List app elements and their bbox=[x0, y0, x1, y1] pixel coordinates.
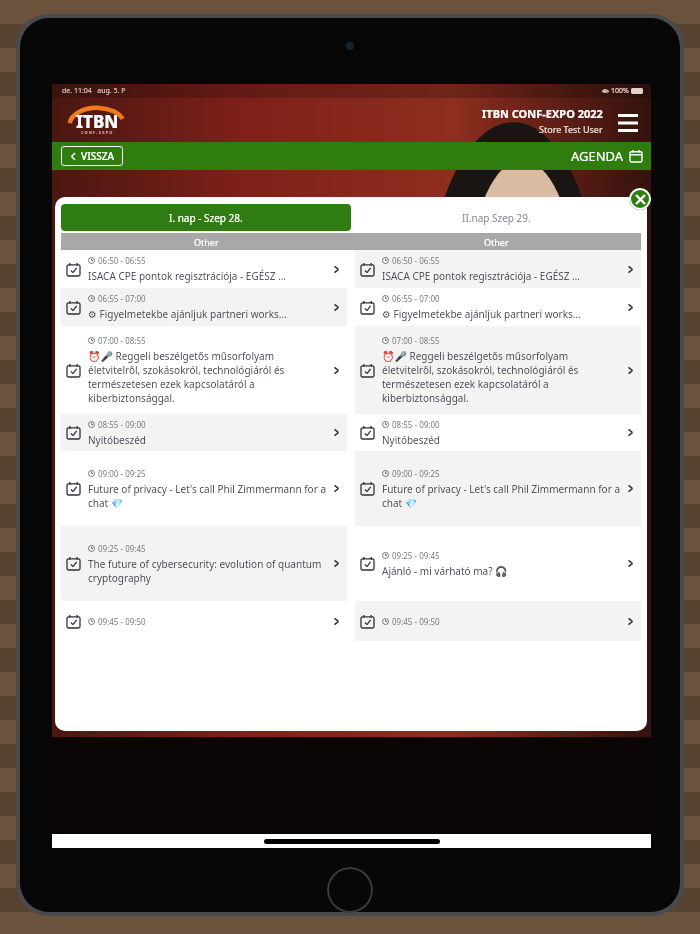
button[interactable]: 07:00 - 08:55 bbox=[61, 326, 347, 414]
staticText: 07:00 - 08:55 bbox=[392, 335, 440, 346]
staticText: Ajánló - mi várható ma? 🎧 bbox=[382, 564, 508, 578]
staticText: I. nap - Szep 28. bbox=[169, 211, 243, 225]
button[interactable]: 08:55 - 09:00 bbox=[355, 414, 641, 451]
button[interactable]: I. nap - Szep 28. bbox=[61, 204, 351, 231]
button[interactable]: 09:00 - 09:25 bbox=[355, 451, 641, 526]
staticText: ⚙ Figyelmetekbe ajánljuk partneri works… bbox=[88, 307, 287, 321]
staticText: 09:25 - 09:45 bbox=[392, 550, 440, 561]
button[interactable]: 09:00 - 09:25 bbox=[61, 451, 347, 526]
button[interactable]: 08:55 - 09:00 bbox=[61, 414, 347, 451]
staticText: Nyitóbeszéd bbox=[382, 433, 441, 447]
staticText: 09:00 - 09:25 bbox=[392, 468, 440, 479]
staticText: The future of cybersecurity: evolution o… bbox=[88, 557, 328, 585]
staticText: 06:55 - 07:00 bbox=[392, 293, 440, 304]
staticText: 09:45 - 09:50 bbox=[392, 616, 440, 627]
staticText: ⏰🎤 Reggeli beszélgetős műsorfolyam életv… bbox=[382, 349, 622, 405]
staticText: ITBN CONF-EXPO 2022 bbox=[482, 106, 603, 121]
button[interactable]: 09:25 - 09:45 bbox=[355, 526, 641, 601]
staticText: ITBN bbox=[76, 110, 119, 133]
staticText: 08:55 - 09:00 bbox=[392, 419, 440, 430]
staticText: Nyitóbeszéd bbox=[88, 433, 147, 447]
staticText: Future of privacy - Let's call Phil Zimm… bbox=[382, 482, 622, 510]
button[interactable]: 06:50 - 06:55 bbox=[355, 250, 641, 288]
button[interactable]: 06:55 - 07:00 bbox=[61, 288, 347, 326]
staticText: VISSZA bbox=[81, 149, 114, 163]
button[interactable]: 06:50 - 06:55 bbox=[61, 250, 347, 288]
staticText: Other bbox=[194, 236, 219, 248]
staticText: AGENDA bbox=[571, 147, 624, 165]
staticText: Other bbox=[484, 236, 509, 248]
button[interactable]: II.nap Szep 29. bbox=[351, 204, 641, 231]
staticText: 06:55 - 07:00 bbox=[98, 293, 146, 304]
button[interactable]: 06:55 - 07:00 bbox=[355, 288, 641, 326]
staticText: 09:00 - 09:25 bbox=[98, 468, 146, 479]
staticText: ⚙ Figyelmetekbe ajánljuk partneri works… bbox=[382, 307, 581, 321]
button[interactable]: AGENDA bbox=[571, 147, 642, 165]
staticText: 06:50 - 06:55 bbox=[392, 255, 440, 266]
staticText: 09:45 - 09:50 bbox=[98, 616, 146, 627]
staticText: ⏰🎤 Reggeli beszélgetős műsorfolyam életv… bbox=[88, 349, 328, 405]
staticText: 09:25 - 09:45 bbox=[98, 543, 146, 554]
staticText: Future of privacy - Let's call Phil Zimm… bbox=[88, 482, 328, 510]
staticText: 07:00 - 08:55 bbox=[98, 335, 146, 346]
button[interactable]: Menu bbox=[615, 108, 641, 134]
button[interactable]: VISSZA bbox=[70, 149, 114, 163]
staticText: ISACA CPE pontok regisztrációja - EGÉSZ … bbox=[88, 269, 286, 283]
button[interactable]: 09:25 - 09:45 bbox=[61, 526, 347, 601]
staticText: de. 11:04 aug. 5. P bbox=[62, 86, 126, 96]
button[interactable]: 07:00 - 08:55 bbox=[355, 326, 641, 414]
staticText: 08:55 - 09:00 bbox=[98, 419, 146, 430]
staticText: ISACA CPE pontok regisztrációja - EGÉSZ … bbox=[382, 269, 580, 283]
staticText: Store Test User bbox=[539, 123, 603, 135]
staticText: II.nap Szep 29. bbox=[462, 211, 531, 225]
staticText: 100% bbox=[611, 86, 629, 96]
button[interactable]: Close bbox=[629, 188, 651, 210]
button[interactable]: 09:45 - 09:50 bbox=[61, 601, 347, 641]
button[interactable]: 09:45 - 09:50 bbox=[355, 601, 641, 641]
staticText: C O N F - E X P O bbox=[81, 130, 113, 135]
staticText: 06:50 - 06:55 bbox=[98, 255, 146, 266]
